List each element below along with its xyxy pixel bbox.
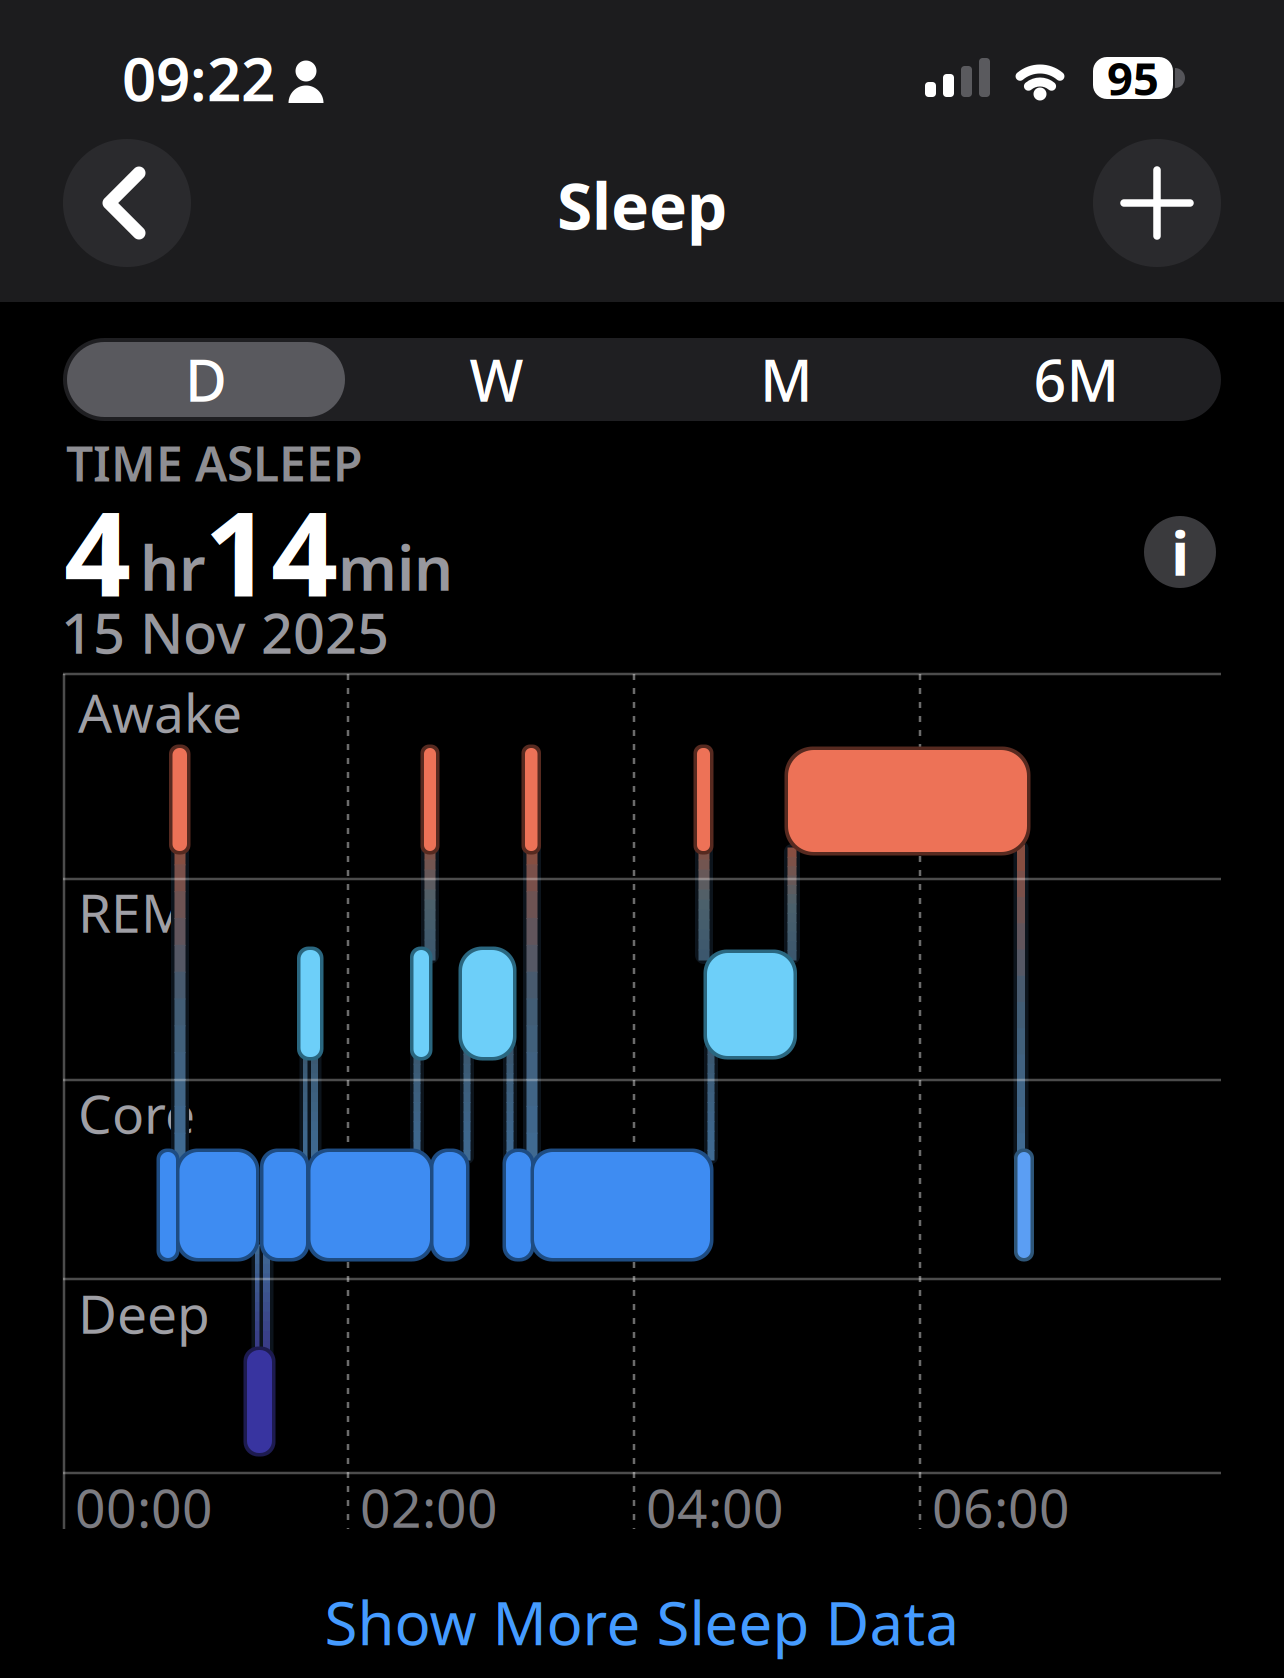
staticText: TIME ASLEEP [66, 431, 363, 495]
staticText: Core [78, 1078, 195, 1148]
staticText: D [185, 341, 227, 417]
staticText: 00:00 [75, 1472, 213, 1542]
staticText: 95 [1107, 48, 1159, 108]
staticText: 04:00 [646, 1472, 784, 1542]
staticText: i [1171, 511, 1189, 593]
staticText: 4 [64, 473, 131, 629]
staticText: REM [78, 877, 189, 947]
button[interactable]: Show More Sleep Data [324, 1582, 959, 1662]
staticText: 02:00 [360, 1472, 498, 1542]
button[interactable]: 6M [937, 342, 1215, 417]
staticText: M [760, 341, 813, 417]
button[interactable]: W [357, 342, 635, 417]
staticText: 06:00 [932, 1472, 1070, 1542]
staticText: 14 [204, 473, 338, 629]
staticText: min [338, 526, 453, 608]
staticText: Deep [78, 1278, 210, 1348]
staticText: 6M [1033, 341, 1119, 417]
staticText: Show More Sleep Data [324, 1582, 959, 1662]
button[interactable]: M [647, 342, 925, 417]
button[interactable] [63, 139, 191, 267]
staticText: W [469, 341, 523, 417]
staticText: hr [140, 526, 206, 608]
staticText: 15 Nov 2025 [61, 595, 389, 669]
staticText: 09:22 [122, 38, 275, 118]
staticText: Sleep [557, 162, 727, 247]
button[interactable]: D [67, 341, 345, 417]
staticText: Awake [78, 677, 242, 747]
button[interactable]: i [1144, 511, 1216, 593]
button[interactable] [1093, 139, 1221, 267]
